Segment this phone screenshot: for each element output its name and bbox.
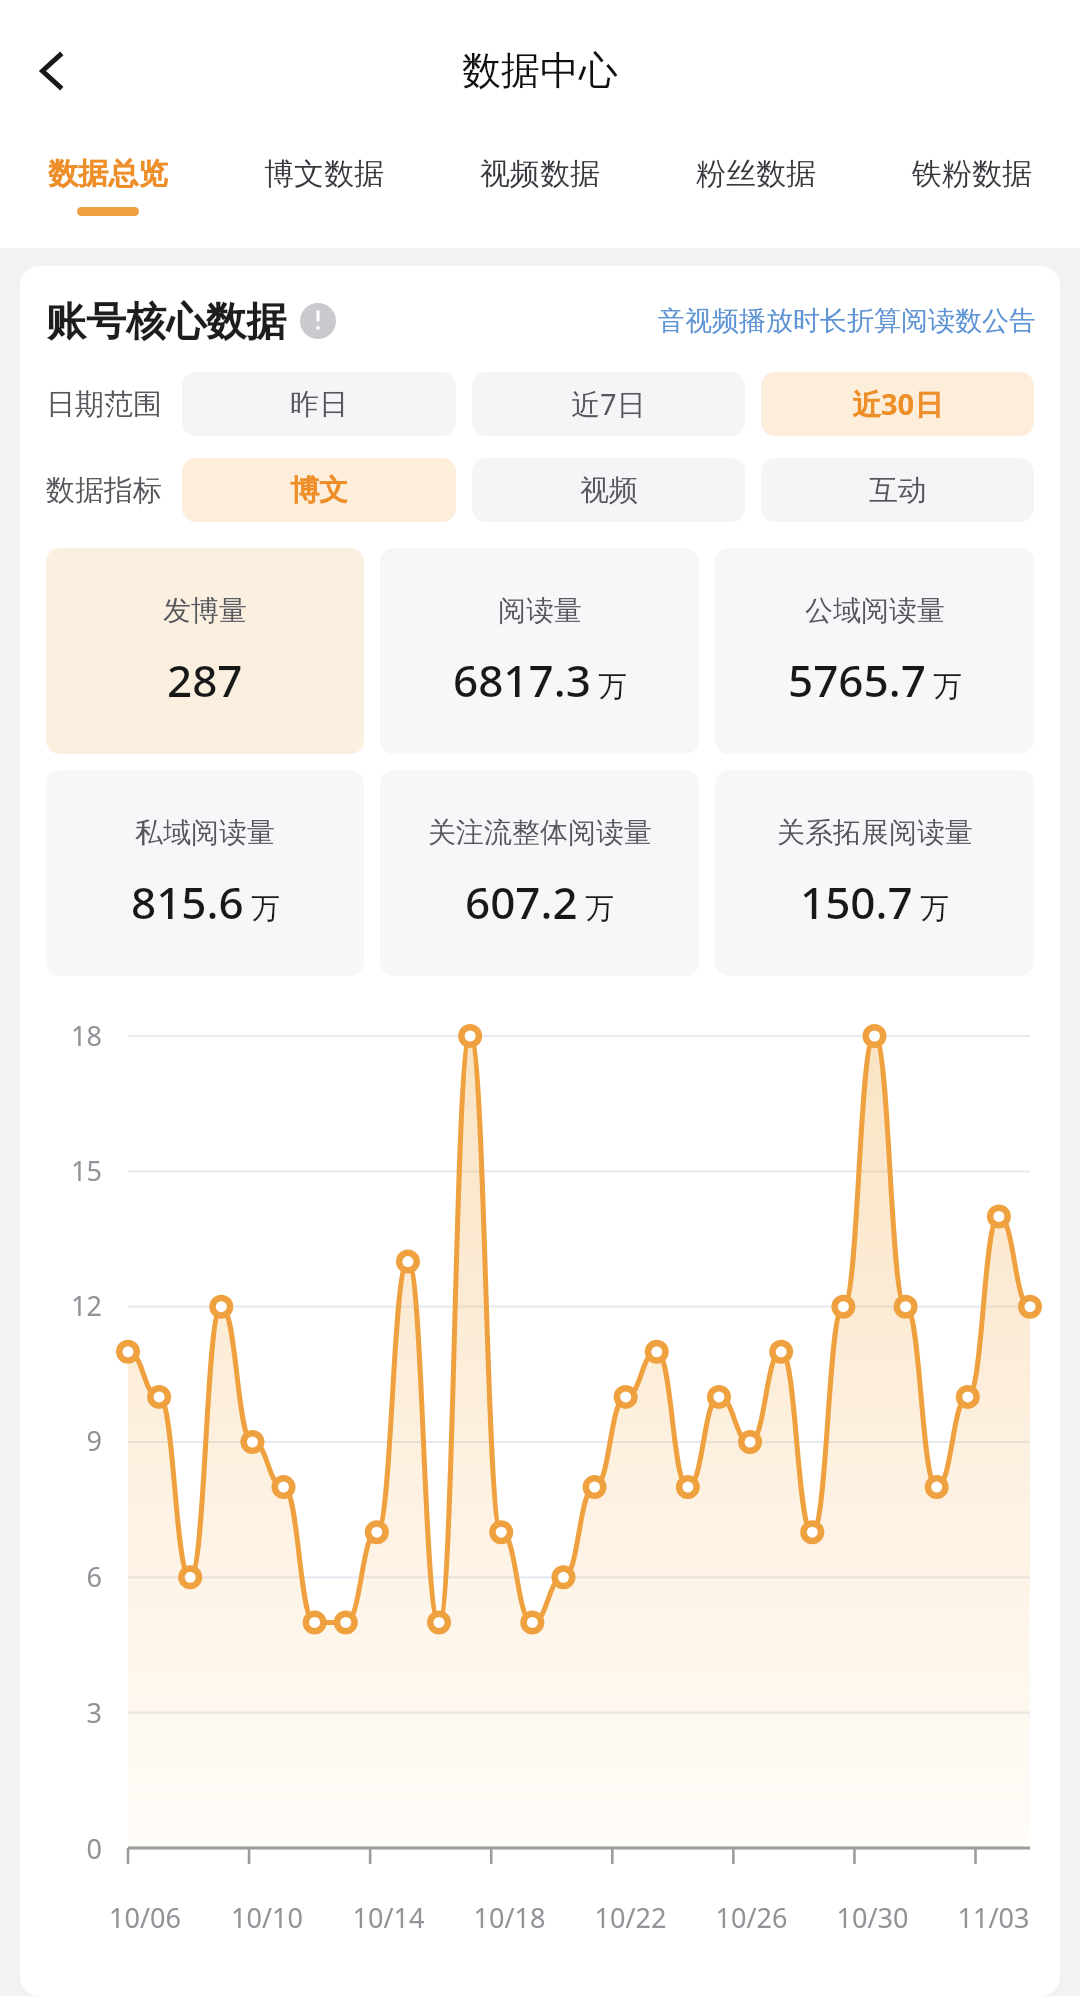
staticText: 数据指标 [46, 472, 162, 509]
button[interactable]: 昨日 [182, 372, 456, 436]
staticText: 815.6 [131, 872, 244, 932]
staticText: 发博量 [163, 593, 247, 628]
button[interactable]: 粉丝数据 [648, 141, 864, 248]
button[interactable]: 关注流整体阅读量 [380, 770, 699, 976]
staticText: 6817.3 [453, 650, 591, 710]
staticText: 9 [20, 1422, 102, 1459]
staticText: 私域阅读量 [135, 815, 275, 850]
staticText: 0 [20, 1830, 102, 1867]
staticText: 阅读量 [498, 593, 582, 628]
staticText: 3 [20, 1694, 102, 1731]
staticText: 公域阅读量 [805, 593, 945, 628]
button[interactable]: 发博量 [46, 548, 364, 754]
staticText: 数据中心 [462, 46, 618, 95]
button[interactable]: 互动 [761, 458, 1034, 522]
staticText: 万 [933, 668, 962, 705]
staticText: 10/18 [449, 1899, 570, 1936]
staticText: 150.7 [800, 872, 913, 932]
staticText: 287 [167, 650, 243, 710]
button[interactable]: 说明 [300, 303, 336, 339]
staticText: 10/30 [812, 1899, 933, 1936]
button[interactable]: 公域阅读量 [715, 548, 1034, 754]
staticText: 10/10 [206, 1899, 328, 1936]
staticText: 日期范围 [46, 386, 162, 423]
staticText: 万 [251, 890, 280, 927]
staticText: 近30日 [852, 384, 944, 424]
staticText: 10/06 [84, 1899, 206, 1936]
staticText: 11/03 [933, 1899, 1054, 1936]
staticText: 5765.7 [788, 650, 926, 710]
staticText: 10/22 [570, 1899, 691, 1936]
staticText: 近7日 [571, 384, 646, 424]
staticText: 万 [598, 668, 627, 705]
button[interactable]: 音视频播放时长折算阅读数公告 [658, 304, 1036, 338]
staticText: 12 [20, 1287, 102, 1324]
button[interactable]: 私域阅读量 [46, 770, 364, 976]
staticText: 6 [20, 1558, 102, 1595]
staticText: 18 [20, 1017, 102, 1054]
button[interactable]: 博文数据 [216, 141, 432, 248]
staticText: 铁粉数据 [912, 155, 1032, 193]
staticText: 万 [585, 890, 614, 927]
button[interactable]: 视频数据 [432, 141, 648, 248]
button[interactable]: 关系拓展阅读量 [715, 770, 1034, 976]
staticText: 视频 [580, 472, 638, 509]
staticText: 关注流整体阅读量 [428, 815, 652, 850]
button[interactable]: 铁粉数据 [864, 141, 1080, 248]
staticText: 关系拓展阅读量 [777, 815, 973, 850]
button[interactable]: 近30日 [761, 372, 1034, 436]
staticText: 博文 [290, 472, 348, 509]
staticText: 10/14 [328, 1899, 449, 1936]
staticText: 607.2 [465, 872, 578, 932]
staticText: 万 [920, 890, 949, 927]
button[interactable]: 近7日 [472, 372, 745, 436]
staticText: 数据总览 [48, 155, 168, 193]
staticText: 昨日 [290, 386, 348, 423]
staticText: 视频数据 [480, 155, 600, 193]
staticText: 粉丝数据 [696, 155, 816, 193]
button[interactable]: 阅读量 [380, 548, 699, 754]
button[interactable]: Back [14, 32, 92, 110]
staticText: 10/26 [691, 1899, 812, 1936]
button[interactable]: 数据总览 [0, 141, 216, 248]
staticText: 互动 [869, 472, 927, 509]
button[interactable]: 博文 [182, 458, 456, 522]
staticText: 账号核心数据 [46, 296, 286, 346]
button[interactable]: 视频 [472, 458, 745, 522]
staticText: 博文数据 [264, 155, 384, 193]
staticText: 15 [20, 1152, 102, 1189]
